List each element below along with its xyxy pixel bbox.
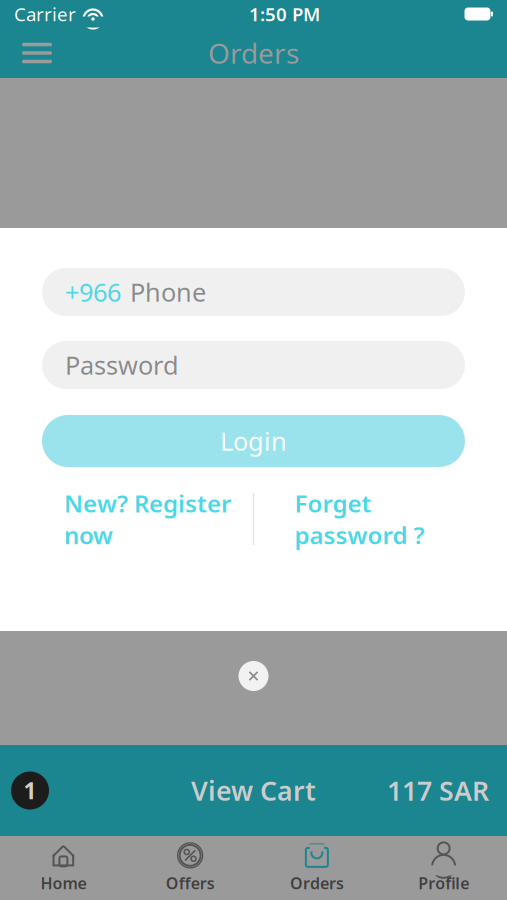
button[interactable]: +966 bbox=[42, 268, 465, 316]
staticText: Home bbox=[40, 872, 86, 894]
button[interactable]: Password bbox=[42, 341, 465, 389]
staticText: Profile bbox=[418, 872, 469, 894]
staticText: Offers bbox=[166, 872, 215, 894]
staticText: Phone bbox=[130, 275, 206, 309]
staticText: 1:50 PM bbox=[249, 2, 320, 26]
staticText: Orders bbox=[290, 872, 344, 894]
button[interactable]: New? Register now bbox=[42, 493, 253, 545]
button[interactable]: Close bbox=[231, 654, 275, 698]
staticText: View Cart bbox=[191, 773, 316, 808]
button[interactable]: 1 bbox=[0, 745, 507, 836]
button[interactable]: Profile bbox=[380, 836, 507, 900]
staticText: 1 bbox=[23, 775, 36, 805]
button[interactable]: Menu bbox=[14, 31, 60, 75]
staticText: Carrier bbox=[14, 2, 76, 26]
staticText: New? Register now bbox=[64, 487, 231, 551]
staticText: +966 bbox=[65, 275, 121, 309]
button[interactable]: Offers bbox=[127, 836, 254, 900]
button[interactable]: Orders bbox=[253, 836, 380, 900]
staticText: 117 SAR bbox=[387, 773, 489, 808]
button[interactable]: Home bbox=[0, 836, 127, 900]
button[interactable]: Login bbox=[42, 415, 465, 467]
staticText: Login bbox=[220, 424, 287, 458]
staticText: Orders bbox=[208, 34, 299, 72]
button[interactable]: Forget password ? bbox=[254, 493, 465, 545]
staticText: Password bbox=[65, 348, 179, 382]
staticText: Forget password ? bbox=[295, 487, 425, 551]
